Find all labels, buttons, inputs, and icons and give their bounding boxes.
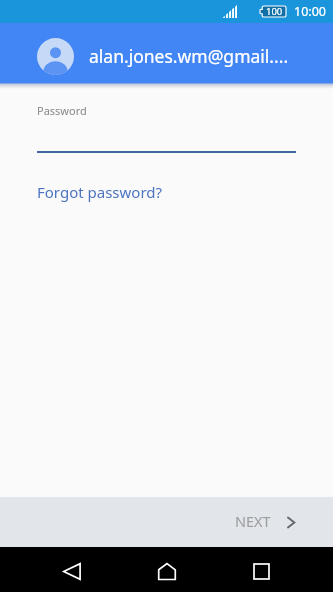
staticText: 10:00 — [294, 3, 326, 20]
staticText: 100 — [266, 5, 283, 18]
staticText: NEXT — [235, 511, 271, 531]
button[interactable]: NEXT — [211, 502, 333, 542]
button[interactable]: Home — [145, 548, 189, 592]
staticText: Password — [37, 103, 87, 118]
button[interactable]: Recents — [239, 548, 283, 592]
button[interactable]: alan.jones.wm@gmail.... — [0, 23, 333, 83]
button[interactable]: Back — [50, 548, 94, 592]
button[interactable]: Forgot password? — [37, 182, 163, 202]
staticText: alan.jones.wm@gmail.... — [89, 44, 289, 68]
